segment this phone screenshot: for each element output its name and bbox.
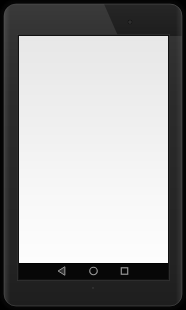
button[interactable] — [19, 36, 168, 263]
button[interactable]: Home — [81, 263, 107, 279]
button[interactable]: Back — [50, 263, 76, 279]
button[interactable]: Recent apps — [112, 263, 138, 279]
